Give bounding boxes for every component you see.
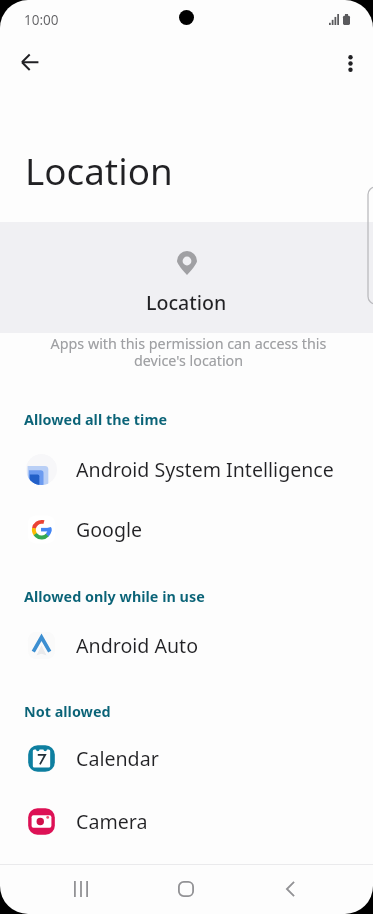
button[interactable]: Recent apps bbox=[57, 865, 105, 913]
button[interactable]: Android Auto bbox=[0, 615, 373, 675]
staticText: Allowed all the time bbox=[24, 410, 168, 430]
button[interactable]: Home bbox=[162, 865, 210, 913]
staticText: Android System Intelligence bbox=[76, 456, 334, 483]
staticText: Camera bbox=[76, 808, 148, 835]
staticText: Location bbox=[25, 146, 173, 196]
button[interactable]: Google bbox=[0, 499, 373, 559]
staticText: Google bbox=[76, 516, 143, 543]
staticText: Allowed only while in use bbox=[24, 587, 205, 607]
staticText: Calendar bbox=[76, 745, 159, 772]
staticText: Android Auto bbox=[76, 632, 198, 659]
staticText: Apps with this permission can access thi… bbox=[46, 334, 331, 370]
button[interactable]: Android System Intelligence bbox=[0, 439, 373, 499]
staticText: 10:00 bbox=[24, 11, 59, 29]
button[interactable]: Camera bbox=[0, 791, 373, 851]
button[interactable]: Back bbox=[5, 38, 55, 88]
button[interactable]: More options bbox=[325, 38, 373, 88]
staticText: Not allowed bbox=[24, 702, 111, 722]
button[interactable]: Calendar bbox=[0, 728, 373, 788]
staticText: Location bbox=[146, 289, 227, 316]
button[interactable]: Back bbox=[266, 865, 314, 913]
